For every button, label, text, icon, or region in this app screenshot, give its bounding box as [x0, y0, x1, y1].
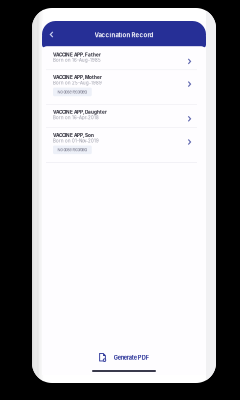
staticText: Generate PDF [114, 354, 149, 361]
staticText: Born on 01-Nov-2019 [53, 138, 99, 143]
staticText: VACCINE APP, Mother [53, 75, 102, 80]
staticText: Born on 25-Aug-1989 [53, 80, 102, 86]
button[interactable]: VACCINE APP, Daughter [42, 105, 206, 127]
staticText: VACCINE APP, Daughter [53, 109, 107, 115]
staticText: VACCINE APP, Son [53, 132, 94, 138]
staticText: No dose recorded. [57, 147, 87, 152]
button[interactable]: Back [44, 27, 58, 42]
button[interactable]: VACCINE APP, Father [42, 47, 206, 69]
button[interactable]: VACCINE APP, Mother [42, 70, 206, 104]
staticText: Vaccination Record [94, 31, 153, 39]
button[interactable]: VACCINE APP, Son [42, 128, 206, 162]
staticText: No dose recorded. [57, 89, 87, 94]
button[interactable]: Generate PDF [42, 349, 206, 366]
staticText: VACCINE APP, Father [53, 52, 101, 57]
staticText: Born on 16-Apr-2018 [53, 115, 99, 120]
staticText: Born on 16-Aug-1985 [53, 58, 101, 63]
